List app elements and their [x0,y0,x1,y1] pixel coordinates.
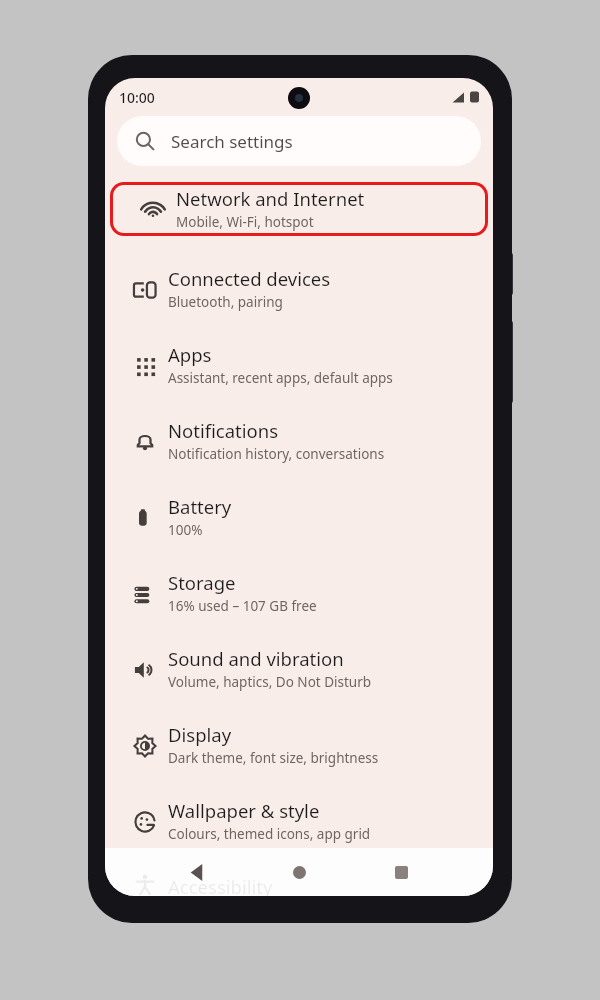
staticText: Storage [168,570,236,595]
button[interactable]: Connected devices [105,257,493,333]
button[interactable]: Accessibility [105,865,493,896]
staticText: Apps [168,342,212,367]
staticText: Notifications [168,418,279,443]
button[interactable]: Display [105,713,493,789]
button[interactable]: Battery [105,485,493,561]
button[interactable]: Wallpaper & style [105,789,493,865]
staticText: Sound and vibration [168,646,344,671]
staticText: 100% [168,521,203,539]
staticText: Connected devices [168,266,331,291]
staticText: Notification history, conversations [168,445,385,463]
button[interactable]: Apps [105,333,493,409]
button[interactable]: Search settings [117,116,481,166]
staticText: Dark theme, font size, brightness [168,749,379,767]
button[interactable]: Sound and vibration [105,637,493,713]
button[interactable]: Back [180,855,214,889]
staticText: Bluetooth, pairing [168,293,283,311]
staticText: Network and Internet [176,186,365,211]
staticText: Mobile, Wi-Fi, hotspot [176,213,314,231]
button[interactable]: Recent apps [384,855,418,889]
staticText: Accessibility [168,874,273,896]
button[interactable]: Notifications [105,409,493,485]
button[interactable]: Home [282,855,316,889]
staticText: Volume, haptics, Do Not Disturb [168,673,372,691]
staticText: Wallpaper & style [168,798,320,823]
button[interactable]: Network and Internet [113,185,485,233]
staticText: Colours, themed icons, app grid [168,825,371,843]
button[interactable]: Storage [105,561,493,637]
staticText: Battery [168,494,232,519]
staticText: 16% used – 107 GB free [168,597,317,615]
staticText: 10:00 [119,88,155,107]
staticText: Search settings [171,130,293,153]
staticText: Assistant, recent apps, default apps [168,369,393,387]
staticText: Display [168,722,232,747]
